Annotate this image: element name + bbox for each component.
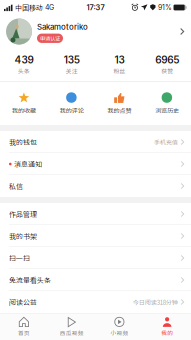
button[interactable]: 我的评论 (48, 92, 96, 115)
staticText: 首页 (18, 329, 30, 337)
staticText: 135 (64, 54, 80, 66)
button[interactable]: Sakamotoriko (0, 15, 191, 48)
button[interactable]: 西瓜视频 (48, 317, 96, 337)
button[interactable]: 首页 (0, 317, 48, 337)
button[interactable]: 浏览历史 (143, 92, 191, 115)
staticText: 手机充值 (154, 138, 178, 146)
staticText: 13 (114, 54, 124, 66)
button[interactable]: 6965 (143, 54, 191, 75)
staticText: 今日阅读318分钟 (133, 298, 178, 306)
staticText: 91% (158, 3, 172, 12)
button[interactable]: 我的书架 (0, 225, 191, 247)
staticText: 头条 (18, 67, 30, 75)
button[interactable]: 免流量看头条 (0, 269, 191, 291)
button[interactable]: 135 (48, 54, 96, 75)
button[interactable]: 我的 (143, 317, 191, 337)
staticText: 西瓜视频 (60, 329, 84, 337)
button[interactable]: 我的点赞 (95, 92, 143, 115)
staticText: 获赞 (161, 67, 173, 75)
staticText: 私信 (9, 181, 23, 191)
staticText: 439 (14, 54, 33, 66)
button[interactable]: 私信 (0, 175, 191, 197)
staticText: 我的评论 (60, 106, 84, 115)
staticText: 我的书架 (9, 231, 37, 241)
staticText: 关注 (66, 67, 78, 75)
button[interactable]: 我的钱包 (0, 131, 191, 153)
staticText: 阅读公益 (9, 297, 37, 307)
staticText: 粉丝 (113, 67, 125, 75)
button[interactable]: 小视频 (95, 317, 143, 337)
staticText: 6965 (155, 54, 179, 66)
staticText: 免流量看头条 (9, 275, 51, 285)
staticText: 我的钱包 (9, 137, 37, 147)
staticText: 浏览历史 (155, 106, 179, 115)
staticText: 我的 (161, 329, 173, 337)
staticText: 小视频 (110, 329, 128, 337)
staticText: 中国移动 (15, 2, 43, 12)
staticText: Sakamotoriko (37, 22, 88, 32)
staticText: 我的点赞 (107, 106, 131, 115)
staticText: 4G (45, 3, 54, 12)
button[interactable]: 13 (95, 54, 143, 75)
staticText: 扫一扫 (9, 253, 30, 263)
button[interactable]: 我的收藏 (0, 92, 48, 115)
staticText: 消息通知 (14, 159, 42, 169)
staticText: 作品管理 (9, 209, 37, 219)
staticText: 我的收藏 (12, 106, 36, 115)
staticText: 17:37 (86, 3, 104, 12)
staticText: 申请认证 (40, 34, 60, 42)
button[interactable]: 439 (0, 54, 48, 75)
button[interactable]: 阅读公益 (0, 291, 191, 313)
button[interactable]: 消息通知 (0, 153, 191, 175)
button[interactable]: 作品管理 (0, 203, 191, 225)
button[interactable]: 扫一扫 (0, 247, 191, 269)
